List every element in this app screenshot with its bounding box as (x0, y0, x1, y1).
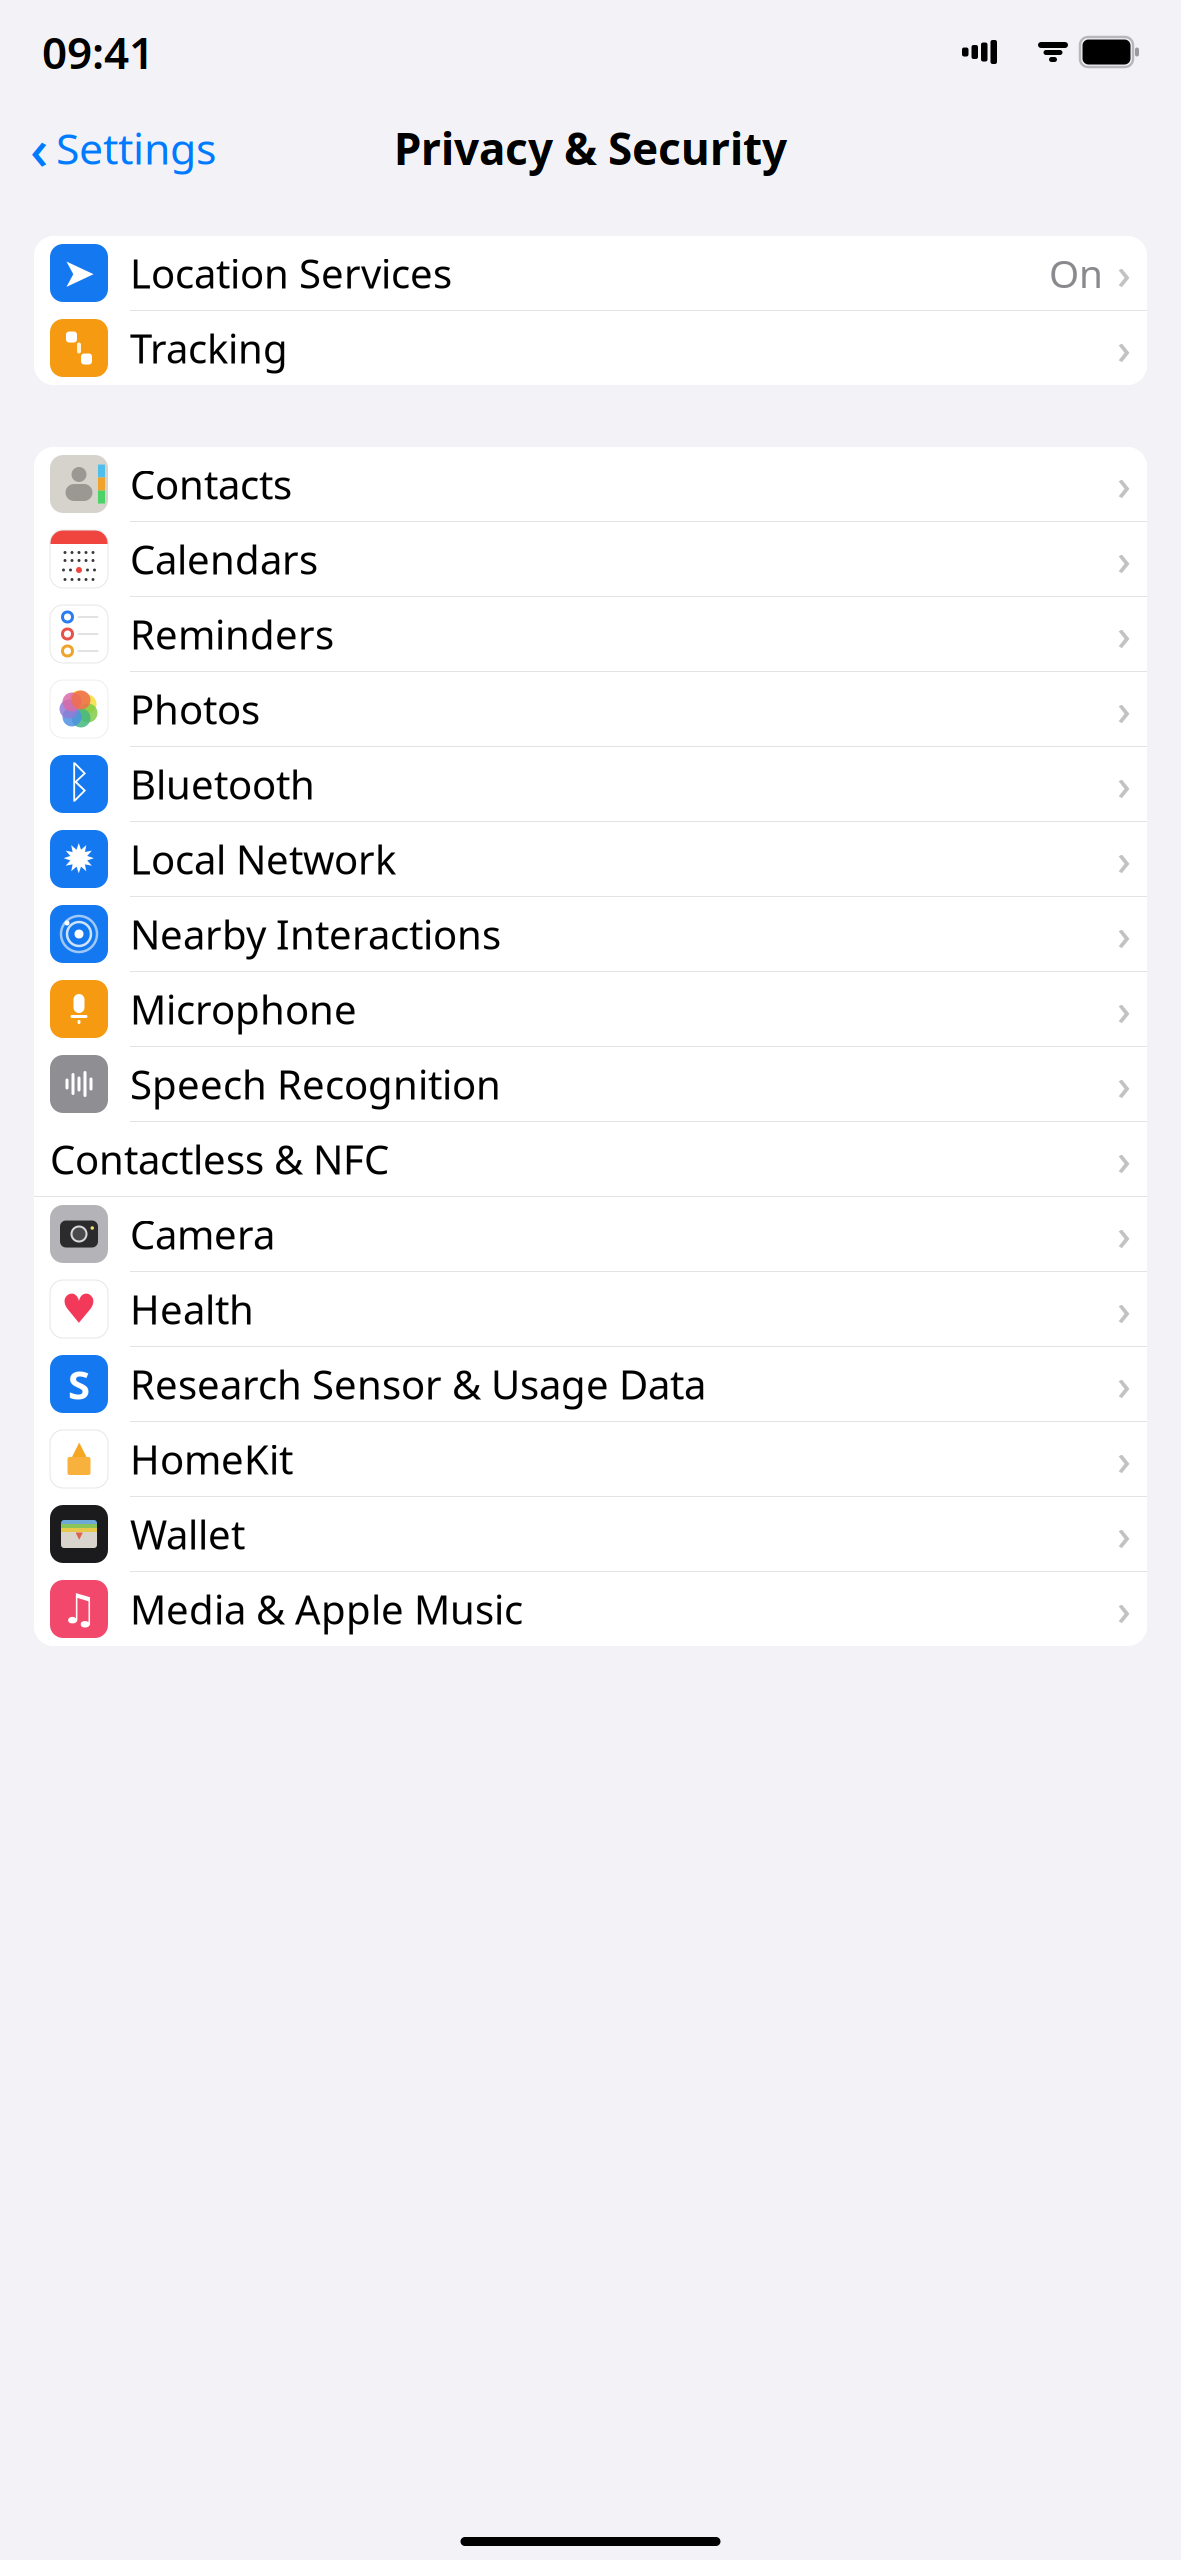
staticText: › (1117, 1506, 1131, 1562)
staticText: › (1117, 320, 1131, 376)
staticText: › (1117, 1056, 1131, 1112)
staticText: › (1117, 831, 1131, 887)
staticText: ▾ (75, 1527, 82, 1543)
staticText: Photos (130, 682, 260, 735)
button[interactable]: ᛒ (34, 747, 1147, 821)
button[interactable]: ➤ (34, 236, 1147, 310)
button[interactable]: ▾ (34, 1497, 1147, 1571)
staticText: Settings (56, 120, 216, 176)
button[interactable]: ✹ (34, 822, 1147, 896)
button[interactable]: Photos (34, 672, 1147, 746)
staticText: › (1117, 606, 1131, 662)
staticText: Local Network (130, 832, 396, 885)
staticText: Media & Apple Music (130, 1582, 523, 1635)
staticText: › (1117, 981, 1131, 1037)
button[interactable]: Nearby Interactions (34, 897, 1147, 971)
staticText: Privacy & Security (394, 119, 787, 177)
staticText: Bluetooth (130, 757, 315, 810)
staticText: Calendars (130, 532, 318, 585)
button[interactable]: Tracking (34, 311, 1147, 385)
staticText: › (1117, 1131, 1131, 1187)
staticText: ✹ (62, 836, 96, 882)
staticText: ◕ (1035, 29, 1070, 75)
staticText: Research Sensor & Usage Data (130, 1357, 706, 1410)
staticText: Microphone (130, 982, 357, 1035)
staticText: › (1117, 456, 1131, 512)
staticText: ♫ (60, 1585, 97, 1632)
button[interactable]: ‹ (20, 115, 226, 181)
staticText: ▲ (69, 1436, 88, 1464)
staticText: › (1117, 1281, 1131, 1337)
staticText: ‹ (30, 111, 48, 185)
button[interactable]: Camera (34, 1197, 1147, 1271)
staticText: Contactless & NFC (50, 1132, 389, 1185)
staticText: › (1117, 906, 1131, 962)
button[interactable]: Contactless & NFC (34, 1122, 1147, 1196)
staticText: Nearby Interactions (130, 907, 501, 960)
staticText: Wallet (130, 1507, 245, 1560)
button[interactable]: ▲ (34, 1422, 1147, 1496)
staticText: Health (130, 1282, 254, 1335)
staticText: › (1117, 1431, 1131, 1487)
button[interactable]: Calendars (34, 522, 1147, 596)
staticText: › (1117, 1206, 1131, 1262)
staticText: › (1117, 245, 1131, 301)
staticText: ♥ (61, 1286, 97, 1332)
staticText: Speech Recognition (130, 1057, 501, 1110)
staticText: Reminders (130, 607, 334, 660)
staticText: Location Services (130, 246, 452, 299)
staticText: › (1117, 1581, 1131, 1637)
staticText: On (1049, 247, 1103, 299)
staticText: ᛒ (66, 762, 92, 805)
button[interactable]: ♥ (34, 1272, 1147, 1346)
button[interactable]: ♫ (34, 1572, 1147, 1646)
staticText: ➤ (62, 250, 96, 296)
staticText: › (1117, 1356, 1131, 1412)
staticText: › (1117, 531, 1131, 587)
staticText: › (1117, 681, 1131, 737)
button[interactable]: S (34, 1347, 1147, 1421)
staticText: Tracking (130, 321, 288, 374)
button[interactable]: Contacts (34, 447, 1147, 521)
staticText: HomeKit (130, 1432, 293, 1485)
staticText: Camera (130, 1207, 275, 1260)
button[interactable]: Speech Recognition (34, 1047, 1147, 1121)
button[interactable]: Reminders (34, 597, 1147, 671)
button[interactable]: Microphone (34, 972, 1147, 1046)
staticText: 09:41 (42, 23, 154, 81)
staticText: Contacts (130, 457, 292, 510)
staticText: › (1117, 756, 1131, 812)
staticText: S (68, 1357, 90, 1410)
